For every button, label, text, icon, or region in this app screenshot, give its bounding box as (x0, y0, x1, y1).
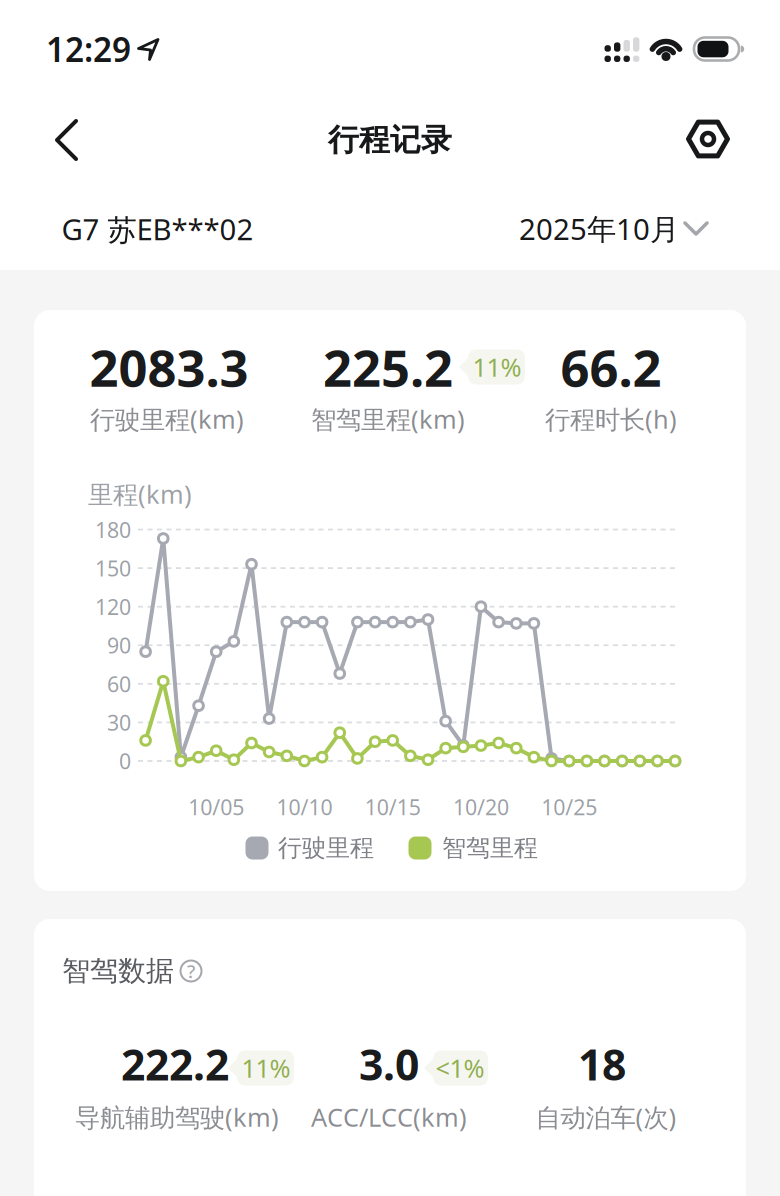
staticText: 行程时长(h) (545, 402, 677, 436)
staticText: 2083.3 (89, 333, 248, 401)
staticText: 11% (472, 350, 521, 384)
staticText: 行程记录 (328, 121, 452, 159)
staticText: 智驾里程(km) (311, 402, 465, 436)
staticText: 10/15 (365, 793, 421, 821)
button[interactable]: Settings (676, 107, 740, 171)
staticText: 3.0 (359, 1036, 419, 1092)
staticText: 222.2 (121, 1036, 229, 1092)
staticText: 120 (95, 592, 131, 621)
staticText: 60 (107, 670, 131, 698)
staticText: 30 (107, 708, 131, 736)
staticText: 66.2 (560, 333, 661, 401)
staticText: 180 (95, 515, 131, 544)
staticText: <1% (435, 1051, 484, 1085)
staticText: 导航辅助驾驶(km) (75, 1100, 279, 1134)
staticText: 里程(km) (88, 477, 192, 511)
button[interactable]: Back (36, 100, 96, 180)
staticText: ? (187, 959, 195, 983)
button[interactable]: G7 苏EB***02 (61, 209, 253, 248)
staticText: 18 (578, 1036, 626, 1092)
staticText: 10/20 (453, 793, 509, 821)
staticText: 10/05 (188, 793, 244, 821)
staticText: 自动泊车(次) (535, 1100, 676, 1134)
staticText: 智驾里程 (442, 833, 538, 863)
staticText: 12:29 (46, 27, 131, 71)
staticText: 11% (241, 1051, 290, 1085)
staticText: 智驾数据 (62, 954, 174, 988)
staticText: 225.2 (323, 333, 453, 401)
staticText: 150 (95, 554, 131, 582)
staticText: G7 苏EB***02 (61, 209, 253, 248)
staticText: 0 (119, 747, 131, 775)
button[interactable]: Help (176, 956, 206, 986)
button[interactable]: 2025年10月 (521, 206, 711, 250)
staticText: 10/10 (276, 793, 332, 821)
staticText: 10/25 (541, 793, 597, 821)
staticText: 90 (107, 631, 131, 659)
staticText: 2025年10月 (519, 209, 679, 248)
staticText: 行驶里程 (278, 833, 374, 863)
staticText: ACC/LCC(km) (311, 1100, 467, 1134)
staticText: 行驶里程(km) (90, 402, 244, 436)
